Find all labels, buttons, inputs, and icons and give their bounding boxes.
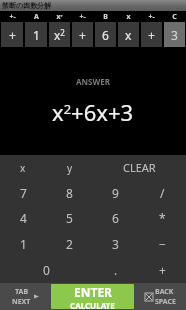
staticText: .	[114, 262, 118, 278]
button[interactable]: 5	[46, 205, 92, 231]
button[interactable]: x	[0, 155, 46, 180]
button[interactable]: 6	[92, 205, 139, 231]
staticText: 2	[66, 236, 73, 252]
staticText: 4	[20, 210, 27, 226]
button[interactable]: x2	[49, 22, 70, 47]
staticText: SPACE	[155, 297, 176, 307]
button[interactable]: 8	[46, 180, 92, 205]
staticText: CLEAR	[123, 160, 156, 175]
button[interactable]: ENTER	[51, 284, 134, 309]
other: Backspace	[145, 293, 153, 301]
button[interactable]: 0	[0, 257, 92, 283]
staticText: 0	[43, 262, 50, 278]
button[interactable]: +	[72, 22, 93, 47]
staticText: C	[172, 12, 177, 22]
staticText: 7	[20, 185, 27, 201]
staticText: x	[20, 161, 26, 175]
button[interactable]: .	[92, 257, 139, 283]
staticText: +-	[79, 12, 86, 22]
button[interactable]: y	[46, 155, 93, 180]
staticText: ENTER	[74, 284, 112, 300]
staticText: TAB	[15, 287, 29, 297]
button[interactable]: 3	[164, 22, 185, 47]
staticText: 禁断の因数分解	[2, 1, 52, 10]
button[interactable]: −	[139, 231, 186, 257]
staticText: +	[159, 262, 166, 278]
staticText: −	[159, 236, 166, 252]
staticText: +	[79, 27, 86, 43]
button[interactable]: 3	[92, 231, 139, 257]
staticText: +	[148, 27, 155, 43]
staticText: /	[160, 185, 165, 201]
staticText: x2	[54, 27, 65, 43]
staticText: +-	[148, 12, 155, 22]
button[interactable]: 2	[46, 231, 92, 257]
button[interactable]: +	[1, 22, 23, 47]
staticText: ANSWER	[76, 76, 110, 87]
button[interactable]: /	[139, 180, 186, 205]
button[interactable]: *	[139, 205, 186, 231]
staticText: *	[159, 210, 166, 226]
button[interactable]: 7	[0, 180, 46, 205]
button[interactable]: 6	[95, 22, 116, 47]
staticText: A	[34, 12, 39, 22]
button[interactable]: +	[139, 257, 186, 283]
staticText: NEXT	[12, 297, 31, 307]
staticText: 3	[112, 236, 119, 252]
staticText: BACK	[155, 287, 174, 297]
button[interactable]: x	[118, 22, 139, 47]
staticText: y	[67, 161, 73, 175]
staticText: +-	[9, 12, 16, 22]
staticText: B	[103, 12, 108, 22]
staticText: 3	[171, 27, 178, 43]
button[interactable]: +	[141, 22, 162, 47]
button[interactable]: CLEAR	[93, 155, 186, 180]
button[interactable]: 4	[0, 205, 46, 231]
staticText: 9	[112, 185, 119, 201]
staticText: 6	[112, 210, 119, 226]
staticText: xʳ	[56, 12, 63, 22]
button[interactable]: 1	[0, 231, 46, 257]
staticText: 1	[33, 27, 40, 43]
staticText: x	[125, 27, 132, 43]
staticText: 6	[102, 27, 109, 43]
staticText: 1	[20, 236, 27, 252]
staticText: 8	[66, 185, 73, 201]
button[interactable]: 9	[92, 180, 139, 205]
button[interactable]: TAB	[0, 283, 51, 310]
button[interactable]: 1	[25, 22, 47, 47]
staticText: CALCULATE	[70, 300, 115, 309]
staticText: 5	[66, 210, 73, 226]
staticText: x	[126, 12, 131, 22]
staticText: x2+6x+3	[52, 97, 134, 127]
button[interactable]: Backspace	[134, 283, 186, 310]
staticText: +	[9, 27, 16, 43]
